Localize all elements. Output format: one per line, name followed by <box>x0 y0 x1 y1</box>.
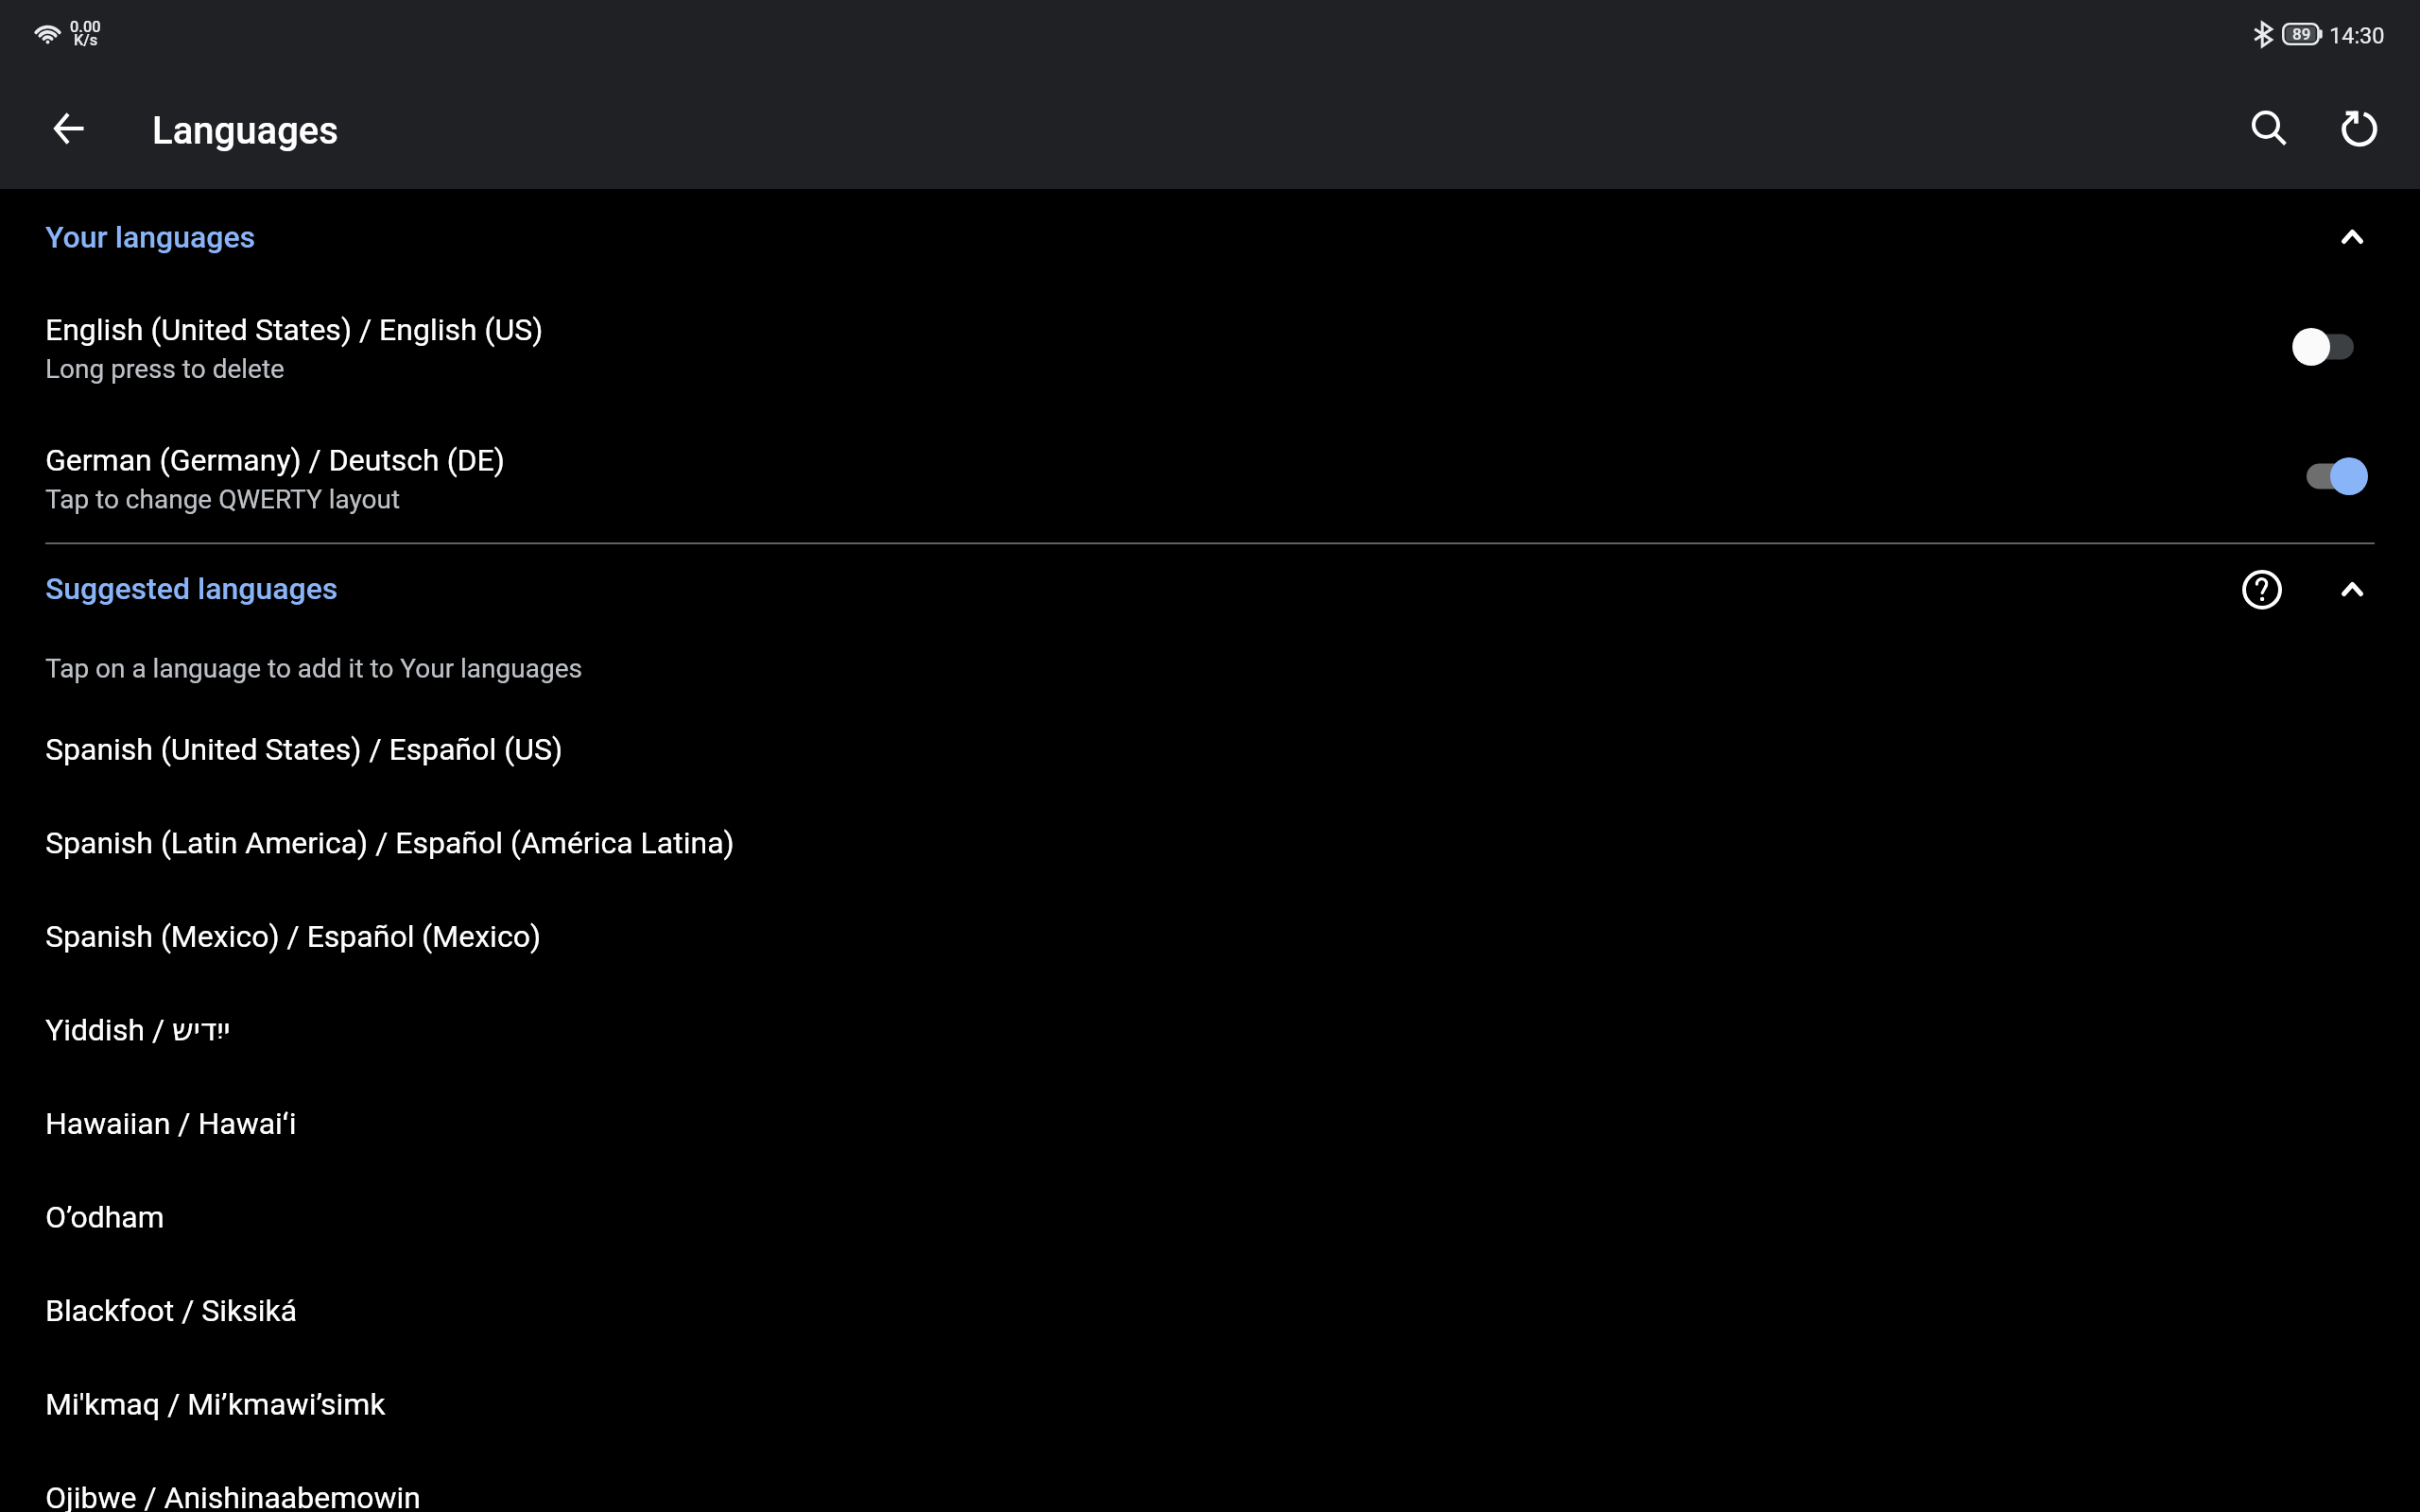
staticText: K/s <box>74 31 98 49</box>
staticText: Suggested languages <box>45 571 338 607</box>
button[interactable]: German (Germany) / Deutsch (DE) <box>0 414 2420 542</box>
staticText: Tap to change QWERTY layout <box>45 484 401 515</box>
staticText: Ojibwe / Anishinaabemowin <box>45 1480 421 1512</box>
staticText: Long press to delete <box>45 353 285 385</box>
button[interactable]: Spanish (United States) / Español (US) <box>0 696 2420 782</box>
button[interactable]: O’odham <box>0 1164 2420 1249</box>
button[interactable]: Enable German (Germany) <box>2292 457 2368 495</box>
staticText: Spanish (United States) / Español (US) <box>45 731 563 767</box>
staticText: Your languages <box>45 219 256 255</box>
staticText: Languages <box>152 109 338 153</box>
staticText: Spanish (Latin America) / Español (Améri… <box>45 825 735 861</box>
button[interactable]: Blackfoot / Siksiká <box>0 1258 2420 1343</box>
button[interactable]: Navigate up <box>23 83 113 174</box>
staticText: 14:30 <box>2329 23 2385 49</box>
button[interactable]: Spanish (Mexico) / Español (Mexico) <box>0 884 2420 969</box>
staticText: German (Germany) / Deutsch (DE) <box>45 442 505 478</box>
button[interactable]: Hawaiian / Hawaiʻi <box>0 1071 2420 1156</box>
button[interactable]: Refresh <box>2314 81 2405 172</box>
staticText: O’odham <box>45 1199 164 1235</box>
button[interactable]: Yiddish / ייִדיש <box>0 977 2420 1062</box>
staticText: Mi'kmaq / Mi’kmawi’simk <box>45 1386 386 1422</box>
button[interactable]: Ojibwe / Anishinaabemowin <box>0 1445 2420 1512</box>
staticText: Yiddish / ייִדיש <box>45 1012 231 1048</box>
button[interactable]: Your languages <box>0 195 2420 280</box>
button[interactable]: Suggested languages <box>0 546 2420 633</box>
staticText: Hawaiian / Hawaiʻi <box>45 1106 297 1142</box>
staticText: Blackfoot / Siksiká <box>45 1293 298 1329</box>
staticText: 0.00 <box>70 18 101 36</box>
button[interactable]: Spanish (Latin America) / Español (Améri… <box>0 790 2420 875</box>
button[interactable]: English (United States) / English (US) <box>0 283 2420 412</box>
button[interactable]: Mi'kmaq / Mi’kmawi’simk <box>0 1351 2420 1436</box>
staticText: 89 <box>2292 25 2311 43</box>
staticText: English (United States) / English (US) <box>45 312 544 348</box>
button[interactable]: Search <box>2224 83 2315 174</box>
staticText: Spanish (Mexico) / Español (Mexico) <box>45 919 542 954</box>
button[interactable]: Help <box>2228 556 2296 624</box>
staticText: Tap on a language to add it to Your lang… <box>45 653 582 684</box>
button[interactable]: Enable English (United States) <box>2292 328 2368 366</box>
